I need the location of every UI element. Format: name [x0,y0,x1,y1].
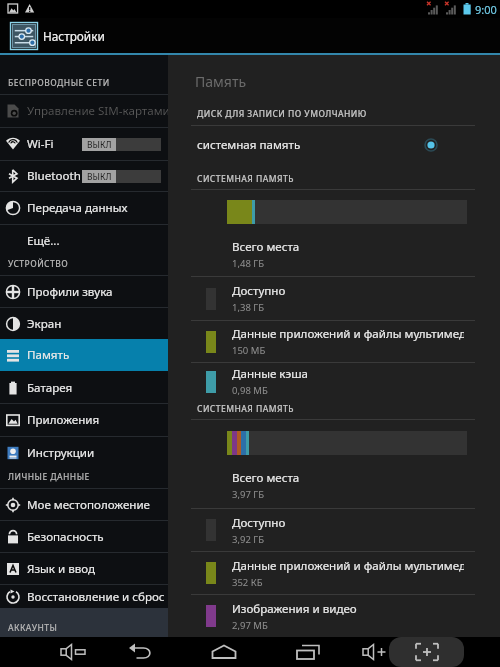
staticText: АККАУНТЫ [8,622,58,634]
staticText: Управление SIM-картами [27,103,168,119]
staticText: Доступно [232,515,286,531]
button[interactable]: Доступно [168,509,500,551]
button[interactable]: Восстановление и сброс [0,585,168,608]
staticText: Безопасность [27,529,104,545]
staticText: Мое местоположение [27,497,151,513]
button[interactable]: Батарея [0,372,168,403]
staticText: 1,38 ГБ [232,301,264,314]
button[interactable]: Данные приложений и файлы мультимедиа [168,552,500,594]
button[interactable]: Мое местоположение [0,489,168,520]
staticText: ДИСК ДЛЯ ЗАПИСИ ПО УМОЛЧАНИЮ [197,108,367,120]
staticText: 150 МБ [232,344,266,357]
button[interactable]: Язык и ввод [0,553,168,584]
staticText: ВЫКЛ [87,171,112,183]
staticText: 352 КБ [232,576,263,589]
button[interactable]: Home [204,637,244,667]
staticText: Всего места [232,239,300,255]
button[interactable]: Приложения [0,404,168,436]
staticText: 0,98 МБ [232,384,268,397]
staticText: Инструкции [27,445,95,461]
button[interactable]: Всего места [168,463,500,508]
button[interactable]: Wi-Fi [0,128,168,160]
staticText: Ещё... [27,233,60,249]
button[interactable]: Экран [0,308,168,339]
button[interactable]: Управление SIM-картами [0,95,168,127]
staticText: Восстановление и сброс [27,589,165,605]
button[interactable]: Профили звука [0,276,168,307]
staticText: 3,97 ГБ [232,488,264,501]
staticText: Всего места [232,470,300,486]
staticText: Данные кэша [232,366,309,382]
staticText: Wi-Fi [27,136,54,152]
staticText: ВЫКЛ [87,139,112,151]
button[interactable]: Изображения и видео [168,595,500,637]
staticText: Данные приложений и файлы мультимедиа [232,326,464,342]
staticText: Изображения и видео [232,601,357,617]
button[interactable]: Bluetooth [0,161,168,191]
staticText: Данные приложений и файлы мультимедиа [232,558,464,574]
staticText: Настройки [43,28,105,44]
button[interactable]: системная память [168,126,500,164]
staticText: ЛИЧНЫЕ ДАННЫЕ [8,471,90,483]
button[interactable]: Volume up [355,637,395,667]
staticText: Язык и ввод [27,561,96,577]
button[interactable]: Данные приложений и файлы мультимедиа [168,321,500,362]
button[interactable]: Recents [288,637,328,667]
staticText: СИСТЕМНАЯ ПАМЯТЬ [197,403,294,415]
staticText: Память [195,72,247,90]
staticText: Приложения [27,412,100,428]
button[interactable]: Volume down [53,637,93,667]
button[interactable]: Безопасность [0,521,168,552]
staticText: Доступно [232,283,286,299]
staticText: Профили звука [27,284,113,300]
staticText: 1,48 ГБ [232,257,264,270]
staticText: БЕСПРОВОДНЫЕ СЕТИ [8,77,110,89]
staticText: СИСТЕМНАЯ ПАМЯТЬ [197,173,294,185]
staticText: Экран [27,316,62,332]
button[interactable]: Back [120,637,160,667]
button[interactable]: Память [0,339,168,371]
staticText: 9:00 [475,2,497,17]
staticText: Батарея [27,380,73,396]
staticText: системная память [197,137,301,153]
button[interactable]: Данные кэша [168,363,500,400]
button[interactable]: Доступно [168,277,500,320]
staticText: Передача данных [27,200,128,216]
staticText: 2,97 МБ [232,619,268,632]
button[interactable]: Screenshot [389,637,464,667]
staticText: УСТРОЙСТВО [8,258,69,270]
button[interactable]: Передача данных [0,192,168,224]
staticText: 3,92 ГБ [232,533,264,546]
staticText: Память [27,347,70,363]
button[interactable]: Инструкции [0,437,168,468]
staticText: Bluetooth [27,168,81,184]
button[interactable]: Всего места [168,232,500,276]
button[interactable]: Ещё... [0,225,168,256]
